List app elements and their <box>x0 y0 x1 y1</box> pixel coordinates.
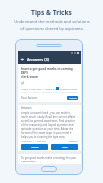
staticText: Answers <box>21 106 32 110</box>
staticText: Popular format <box>60 87 78 90</box>
staticText: Helpful? <box>69 140 78 143</box>
button[interactable]: Back <box>20 57 25 62</box>
staticText: Asked: 2 Days ago | Views: 48 <box>21 87 56 90</box>
button[interactable]: Helpful <box>21 144 48 150</box>
staticText: Tips & Tricks <box>31 8 72 17</box>
staticText: Helpful <box>31 146 39 149</box>
staticText: To get good marks make a strategy for yo… <box>21 156 78 162</box>
staticText: how to get good marks in coming IBPS cle… <box>21 67 78 79</box>
button[interactable]: Popular format <box>56 87 78 90</box>
staticText: Your Answer <box>21 96 38 100</box>
staticText: Answers (3) <box>27 57 50 62</box>
button[interactable]: Submit <box>67 96 78 100</box>
staticText: simple just work hard , you can make it.… <box>21 111 78 139</box>
staticText: Reply <box>62 146 68 149</box>
button[interactable]: Reply <box>51 144 78 150</box>
staticText: gk <box>21 81 25 85</box>
staticText: Submit <box>69 97 77 100</box>
staticText: Understand the methods and solutions of … <box>14 19 90 32</box>
staticText: Answered | 1 day ago <box>21 140 46 143</box>
